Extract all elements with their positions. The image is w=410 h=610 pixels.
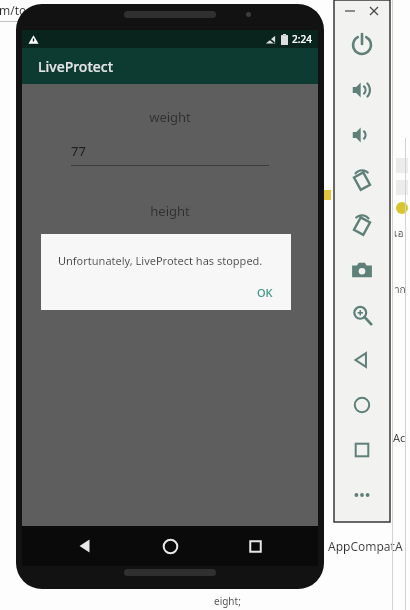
button[interactable]: Volume up — [334, 67, 390, 112]
button[interactable]: Power — [334, 22, 390, 67]
staticText: เอ — [394, 226, 404, 242]
button[interactable]: Minimize — [343, 4, 357, 18]
button[interactable]: Zoom — [334, 292, 390, 337]
button[interactable]: Take screenshot — [334, 247, 390, 292]
button[interactable]: Back — [63, 526, 107, 566]
button[interactable]: Overview — [334, 427, 390, 472]
staticText: Unfortunately, LiveProtect has stopped. — [58, 253, 263, 268]
button[interactable]: Volume down — [334, 112, 390, 157]
button[interactable]: OK — [247, 280, 283, 305]
staticText: height — [22, 202, 318, 220]
staticText: AppCompatA — [328, 538, 403, 554]
button[interactable]: 77 — [71, 142, 269, 166]
button[interactable]: Back — [334, 337, 390, 382]
staticText: weight — [22, 108, 318, 126]
button[interactable]: Recent apps — [233, 526, 277, 566]
staticText: m/to — [0, 2, 27, 18]
staticText: Ac — [393, 430, 406, 445]
button[interactable]: More — [334, 472, 390, 517]
staticText: าก — [394, 282, 406, 298]
button[interactable]: Home — [148, 526, 192, 566]
staticText: 77 — [71, 142, 86, 160]
staticText: OK — [257, 285, 273, 300]
staticText: eight; — [214, 594, 241, 608]
button[interactable]: Home — [334, 382, 390, 427]
button[interactable]: Rotate right — [334, 202, 390, 247]
button[interactable]: Rotate left — [334, 157, 390, 202]
staticText: 2:24 — [292, 32, 312, 46]
button[interactable]: Close — [367, 4, 381, 18]
staticText: LiveProtect — [38, 57, 114, 76]
